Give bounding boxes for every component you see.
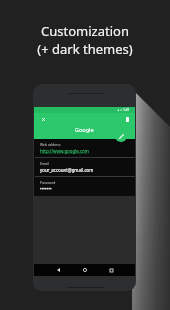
button[interactable]: Back xyxy=(54,266,62,274)
button[interactable]: Edit xyxy=(115,130,127,142)
button[interactable]: Recents xyxy=(107,266,115,274)
staticText: http://www.google.com xyxy=(40,148,89,154)
button[interactable]: Close xyxy=(39,115,48,124)
staticText: Customization xyxy=(41,22,129,40)
staticText: (+ dark themes) xyxy=(37,40,133,58)
button[interactable]: Save xyxy=(123,115,132,124)
staticText: Password xyxy=(40,180,56,185)
staticText: your_account@gmail.com xyxy=(40,167,94,173)
staticText: ••••••• xyxy=(40,186,52,192)
staticText: Web address xyxy=(40,142,61,147)
staticText: Google xyxy=(75,126,94,133)
button[interactable]: Password xyxy=(34,177,135,195)
button[interactable]: Web address xyxy=(34,139,135,157)
button[interactable]: Home xyxy=(81,266,89,274)
staticText: 1:41 xyxy=(123,108,130,112)
staticText: Email xyxy=(40,161,49,166)
button[interactable]: Email xyxy=(34,158,135,176)
